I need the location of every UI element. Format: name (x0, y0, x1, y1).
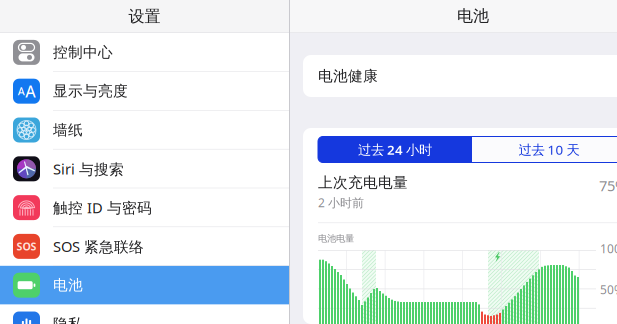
staticText: 75% (599, 176, 617, 195)
staticText: SOS (16, 239, 36, 253)
staticText: A (25, 81, 35, 102)
staticText: 电池健康 (318, 67, 378, 85)
button[interactable]: A (0, 72, 289, 111)
button[interactable]: SOS (0, 227, 289, 266)
staticText: 上次充电电量 (318, 173, 408, 191)
staticText: 电池 (457, 6, 489, 26)
staticText: 2 小时前 (318, 194, 364, 210)
button[interactable]: 电池健康 (303, 55, 617, 97)
button[interactable]: 控制中心 (0, 33, 289, 72)
staticText: 电池电量 (318, 233, 354, 244)
button[interactable]: 隐私 (0, 305, 289, 324)
staticText: 隐私 (53, 315, 83, 324)
staticText: 控制中心 (53, 43, 113, 61)
staticText: 100 (600, 240, 617, 256)
staticText: A (18, 84, 25, 98)
staticText: 设置 (128, 7, 160, 26)
staticText: 50% (600, 281, 617, 297)
staticText: 显示与亮度 (53, 82, 128, 100)
button[interactable]: 墙纸 (0, 111, 289, 149)
staticText: 电池 (53, 276, 83, 294)
staticText: SOS 紧急联络 (53, 237, 144, 256)
staticText: 过去 24 小时 (358, 141, 432, 158)
button[interactable]: 过去 10 天 (472, 136, 617, 162)
staticText: 触控 ID 与密码 (53, 198, 152, 217)
button[interactable]: Siri 与搜索 (0, 149, 289, 188)
button[interactable]: 触控 ID 与密码 (0, 188, 289, 227)
button[interactable]: 电池 (0, 266, 289, 305)
staticText: 墙纸 (53, 121, 83, 139)
staticText: Siri 与搜索 (53, 159, 124, 179)
staticText: 过去 10 天 (518, 141, 579, 158)
button[interactable]: 过去 24 小时 (318, 136, 472, 162)
